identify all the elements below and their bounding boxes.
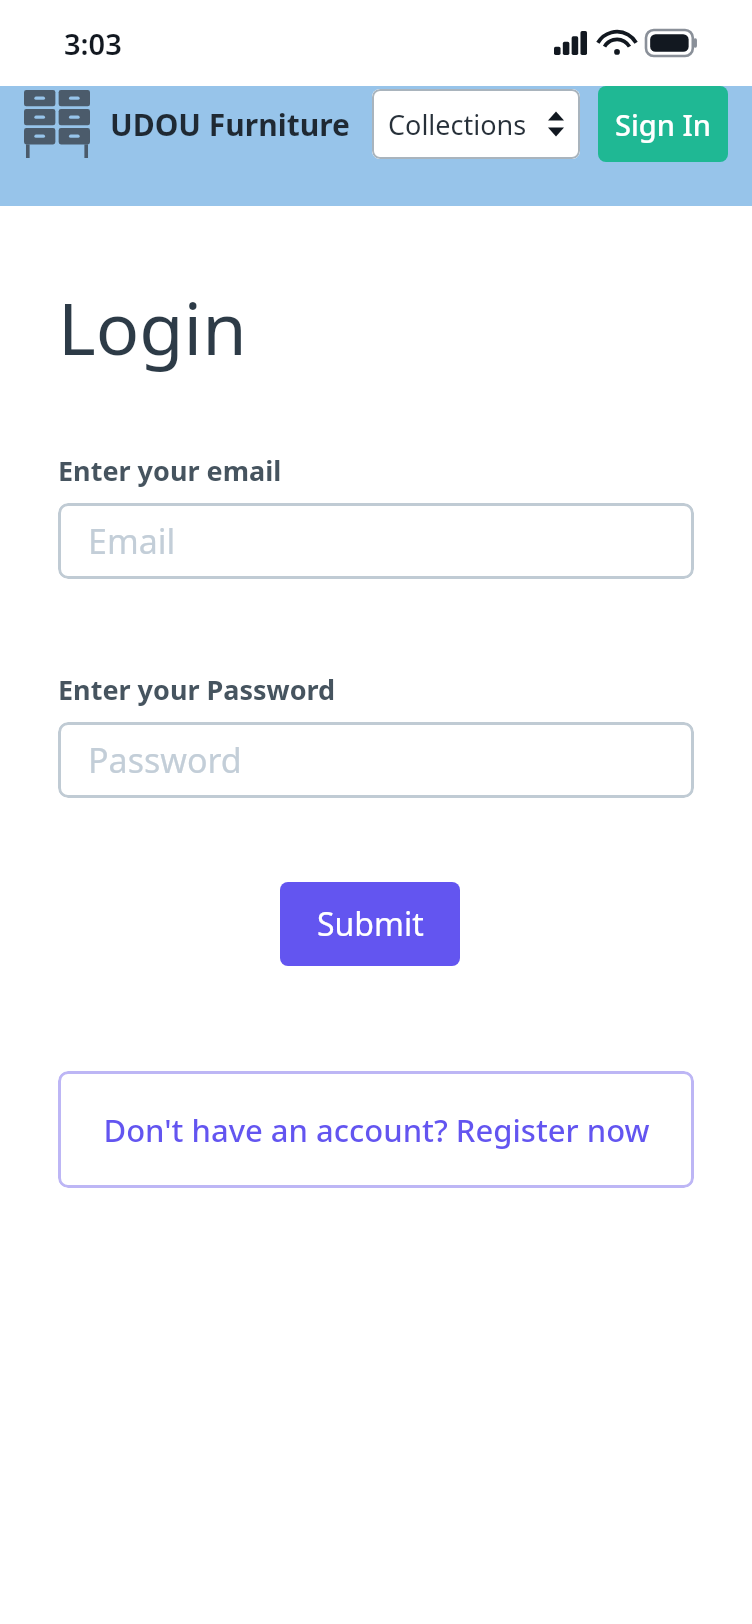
staticText: Enter your email [58,452,282,489]
button[interactable]: Collections [372,89,580,159]
staticText: 3:03 [64,24,122,63]
staticText: Submit [317,902,424,946]
button[interactable]: Password [58,722,694,798]
staticText: UDOU Furniture [110,104,350,145]
button[interactable]: Don't have an account? Register now [58,1071,694,1188]
staticText: Email [88,518,176,564]
button[interactable]: Email [58,503,694,579]
staticText: Password [88,737,242,783]
button[interactable]: Sign In [598,86,728,162]
staticText: Sign In [615,105,711,144]
staticText: Don't have an account? Register now [103,1109,650,1151]
staticText: Collections [388,106,527,143]
staticText: Enter your Password [58,671,336,708]
button[interactable]: Submit [280,882,460,966]
staticText: Login [58,278,247,376]
